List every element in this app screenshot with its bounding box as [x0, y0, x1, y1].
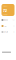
staticText: Sunny [3, 14, 8, 16]
staticText: Star [4, 25, 7, 27]
staticText: Draft [4, 31, 7, 33]
staticText: 72 [3, 8, 7, 13]
staticText: Inbox [4, 19, 8, 21]
staticText: 12 [12, 19, 14, 21]
staticText: TODAY [3, 5, 8, 7]
button[interactable]: Star [1, 25, 14, 27]
button[interactable]: Draft [1, 31, 14, 33]
button[interactable]: TODAY [1, 4, 14, 16]
button[interactable]: Inbox [1, 19, 14, 21]
